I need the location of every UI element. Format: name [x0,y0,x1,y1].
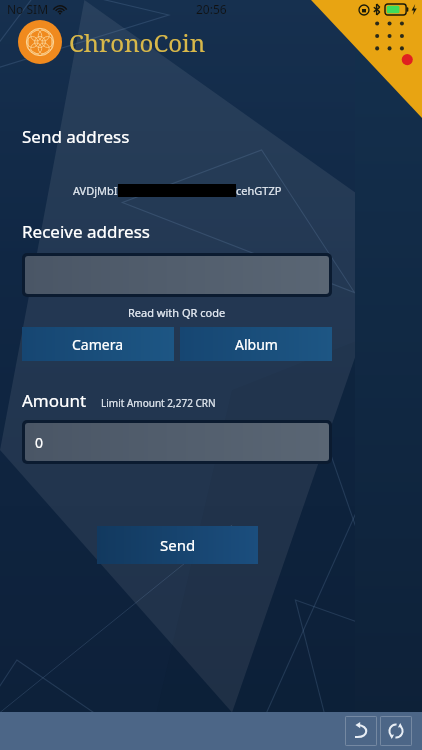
staticText: No SIM [7,1,49,17]
staticText: 20:56 [196,1,227,17]
staticText: Send address [22,125,130,148]
button[interactable]: 0 [25,423,329,461]
staticText: Limit Amount 2,272 CRN [101,396,216,410]
staticText: Camera [72,335,124,354]
staticText: Receive address [22,220,150,243]
staticText: Read with QR code [128,305,226,320]
staticText: 0 [35,433,44,452]
staticText: Album [235,335,278,354]
button[interactable] [25,256,329,294]
button[interactable]: Refresh [380,716,412,746]
button[interactable]: Album [180,327,332,361]
staticText: Amount [22,389,87,412]
staticText: AVDjMbI [73,183,118,198]
staticText: ChronoCoin [69,26,206,59]
button[interactable]: ChronoCoin [18,19,271,65]
staticText: cehGTZP [236,183,282,198]
button[interactable]: Back [345,716,377,746]
button[interactable]: Send [97,526,258,564]
button[interactable]: Camera [22,327,174,361]
staticText: Send [160,535,196,555]
